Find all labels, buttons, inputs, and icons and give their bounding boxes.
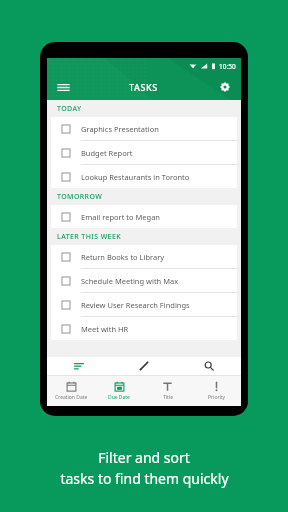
staticText: Return Books to Library xyxy=(81,252,165,262)
staticText: TOMORROW xyxy=(57,192,103,202)
staticText: Review User Research Findings xyxy=(81,300,190,310)
staticText: Meet with HR xyxy=(81,324,129,334)
staticText: TODAY xyxy=(57,104,82,114)
button[interactable]: Email report to Megan xyxy=(51,205,237,228)
staticText: Graphics Presentation xyxy=(81,124,159,134)
button[interactable]: Return Books to Library xyxy=(51,245,237,268)
button[interactable]: Graphics Presentation xyxy=(51,117,237,140)
staticText: tasks to find them quickly xyxy=(60,469,229,488)
staticText: LATER THIS WEEK xyxy=(57,232,122,242)
button[interactable]: Creation Date xyxy=(47,376,95,406)
button[interactable]: Priority xyxy=(192,376,241,406)
button[interactable]: Schedule Meeting with Max xyxy=(51,269,237,292)
button[interactable]: Settings xyxy=(215,77,235,97)
button[interactable]: Title xyxy=(143,376,192,406)
staticText: Due Date xyxy=(108,394,130,401)
staticText: Creation Date xyxy=(55,394,88,401)
button[interactable]: Lookup Restaurants in Toronto xyxy=(51,165,237,188)
button[interactable]: Search xyxy=(176,357,241,375)
staticText: Title xyxy=(163,394,173,401)
button[interactable]: Budget Report xyxy=(51,141,237,164)
staticText: Lookup Restaurants in Toronto xyxy=(81,172,190,182)
button[interactable]: Due Date xyxy=(95,376,143,406)
staticText: Email report to Megan xyxy=(81,212,160,222)
staticText: Priority xyxy=(208,394,226,401)
button[interactable]: Edit xyxy=(111,357,176,375)
button[interactable]: Meet with HR xyxy=(51,317,237,340)
button[interactable]: Sort xyxy=(47,357,111,375)
staticText: TASKS xyxy=(129,81,158,93)
staticText: Filter and sort xyxy=(98,448,190,467)
staticText: 10:50 xyxy=(219,62,236,71)
button[interactable]: Review User Research Findings xyxy=(51,293,237,316)
staticText: Schedule Meeting with Max xyxy=(81,276,179,286)
staticText: Budget Report xyxy=(81,148,133,158)
button[interactable]: Open navigation menu xyxy=(53,77,73,97)
